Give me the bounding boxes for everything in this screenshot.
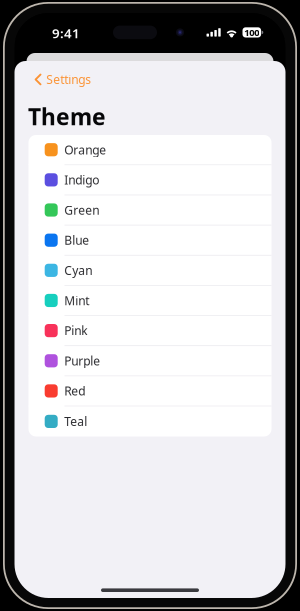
button[interactable]: Settings xyxy=(28,67,97,91)
staticText: Indigo xyxy=(64,172,99,188)
staticText: Theme xyxy=(28,101,106,132)
button[interactable]: Cyan xyxy=(28,256,271,286)
staticText: Teal xyxy=(64,413,87,429)
staticText: Blue xyxy=(64,232,89,248)
button[interactable]: Pink xyxy=(28,316,271,346)
button[interactable]: Purple xyxy=(28,346,271,376)
staticText: 9:41 xyxy=(52,24,80,42)
button[interactable]: Blue xyxy=(28,225,271,255)
staticText: Orange xyxy=(64,142,106,158)
staticText: Purple xyxy=(64,353,100,369)
staticText: Cyan xyxy=(64,262,92,278)
button[interactable]: Indigo xyxy=(28,165,271,195)
button[interactable]: Teal xyxy=(28,406,271,436)
button[interactable]: Mint xyxy=(28,286,271,316)
button[interactable]: Green xyxy=(28,195,271,225)
staticText: 100 xyxy=(244,26,259,39)
staticText: Settings xyxy=(46,71,91,87)
button[interactable]: Orange xyxy=(28,135,271,165)
staticText: Green xyxy=(64,202,99,218)
staticText: Red xyxy=(64,383,85,399)
staticText: Mint xyxy=(64,292,89,308)
staticText: Pink xyxy=(64,323,87,339)
button[interactable]: Red xyxy=(28,376,271,406)
